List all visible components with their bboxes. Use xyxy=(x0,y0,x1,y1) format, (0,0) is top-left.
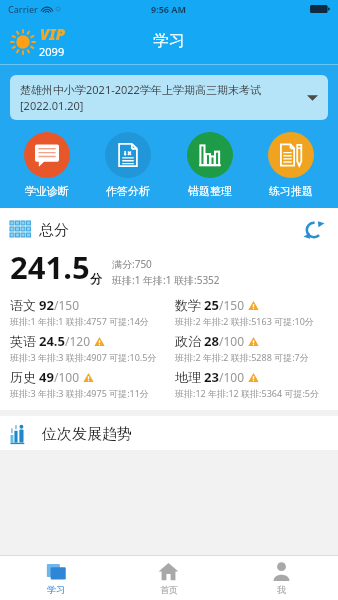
staticText: 政治 xyxy=(175,333,201,349)
staticText: 24.5 xyxy=(39,332,65,350)
button[interactable]: 刷新 xyxy=(300,216,328,244)
button[interactable]: 作答分析 xyxy=(91,132,165,198)
staticText: 92 xyxy=(39,296,54,314)
button[interactable]: 英语 xyxy=(10,332,165,368)
button[interactable]: 错题整理 xyxy=(173,132,247,198)
staticText: 2099 xyxy=(39,44,65,59)
staticText: 25 xyxy=(204,296,219,314)
button[interactable]: 地理 xyxy=(175,368,330,404)
staticText: 班排:12 年排:12 联排:5364 可提:5分 xyxy=(175,387,320,399)
button[interactable]: 首页 xyxy=(112,556,225,600)
staticText: Carrier xyxy=(8,3,38,15)
staticText: 9:56 AM xyxy=(151,3,187,15)
staticText: 学习 xyxy=(47,584,65,595)
staticText: /100 xyxy=(219,369,245,385)
staticText: 班排:2 年排:2 联排:5163 可提:10分 xyxy=(175,315,314,327)
button[interactable]: 学业诊断 xyxy=(10,132,84,198)
staticText: 练习推题 xyxy=(269,184,313,198)
staticText: 总分 xyxy=(39,221,69,240)
staticText: 满分:750 xyxy=(112,257,152,271)
staticText: 首页 xyxy=(160,584,178,595)
staticText: 我 xyxy=(277,584,286,595)
staticText: 241.5 xyxy=(10,246,90,288)
button[interactable]: 政治 xyxy=(175,332,330,368)
staticText: 语文 xyxy=(10,297,36,313)
staticText: 位次发展趋势 xyxy=(42,425,132,444)
staticText: 班排:3 年排:3 联排:4975 可提:11分 xyxy=(10,387,149,399)
staticText: /150 xyxy=(54,297,80,313)
staticText: /100 xyxy=(54,369,80,385)
staticText: 23 xyxy=(204,368,219,386)
button[interactable]: 数学 xyxy=(175,296,330,332)
staticText: 错题整理 xyxy=(188,184,232,198)
staticText: 楚雄州中小学2021-2022学年上学期高三期末考试[2022.01.20] xyxy=(20,82,301,113)
staticText: 28 xyxy=(204,332,219,350)
button[interactable]: 语文 xyxy=(10,296,165,332)
button[interactable]: 我 xyxy=(225,556,338,600)
staticText: 英语 xyxy=(10,333,36,349)
button[interactable]: 练习推题 xyxy=(254,132,328,198)
staticText: 作答分析 xyxy=(106,184,150,198)
staticText: 班排:3 年排:3 联排:4907 可提:10.5分 xyxy=(10,351,157,363)
button[interactable]: 学习 xyxy=(0,556,112,600)
staticText: 学业诊断 xyxy=(25,184,69,198)
staticText: 班排:1 年排:1 联排:5352 xyxy=(112,273,220,287)
staticText: VIP xyxy=(40,24,65,44)
button[interactable]: VIP xyxy=(10,24,65,59)
staticText: 班排:2 年排:2 联排:5288 可提:7分 xyxy=(175,351,309,363)
staticText: /150 xyxy=(219,297,245,313)
staticText: 49 xyxy=(39,368,54,386)
staticText: 历史 xyxy=(10,369,36,385)
staticText: 地理 xyxy=(175,369,201,385)
staticText: 班排:1 年排:1 联排:4757 可提:14分 xyxy=(10,315,149,327)
staticText: 分 xyxy=(90,271,102,286)
staticText: 学习 xyxy=(153,31,185,51)
staticText: /120 xyxy=(65,333,91,349)
staticText: 数学 xyxy=(175,297,201,313)
staticText: /100 xyxy=(219,333,245,349)
button[interactable]: 历史 xyxy=(10,368,165,404)
button[interactable]: 楚雄州中小学2021-2022学年上学期高三期末考试[2022.01.20] xyxy=(10,75,328,120)
